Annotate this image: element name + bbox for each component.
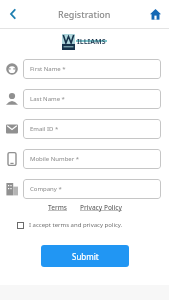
button[interactable]: I accept terms and privacy policy. (17, 221, 123, 229)
staticText: ILLIAMS (77, 37, 106, 47)
staticText: Registration (58, 8, 111, 20)
staticText: I accept terms and privacy policy. (29, 221, 123, 229)
staticText: Mobile Number * (30, 155, 80, 163)
button[interactable]: Last Name * (23, 89, 161, 109)
staticText: Submit (72, 251, 99, 262)
staticText: First Name * (30, 65, 66, 73)
button[interactable]: First Name * (23, 59, 161, 79)
staticText: Email ID * (30, 125, 59, 133)
button[interactable]: Submit (41, 245, 129, 267)
staticText: Last Name * (30, 95, 65, 103)
button[interactable]: Privacy Policy (80, 203, 122, 212)
button[interactable]: Company * (23, 179, 161, 199)
button[interactable] (147, 6, 163, 22)
button[interactable]: Email ID * (23, 119, 161, 139)
button[interactable]: Terms (48, 203, 67, 212)
button[interactable]: Mobile Number * (23, 149, 161, 169)
staticText: Company * (30, 185, 62, 193)
button[interactable] (4, 5, 22, 23)
